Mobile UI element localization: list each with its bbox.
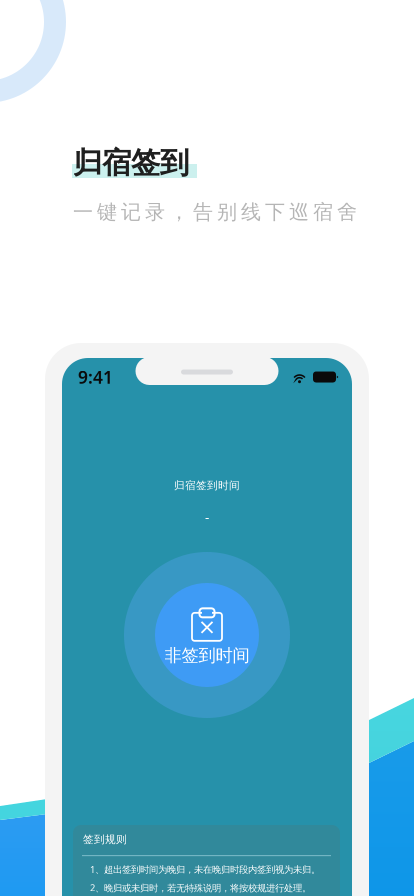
staticText: 2、晚归或未归时，若无特殊说明，将按校规进行处理。 [90,881,311,894]
staticText: - [205,508,209,526]
staticText: 1、超出签到时间为晚归，未在晚归时段内签到视为未归。 [90,863,320,875]
staticText: 9:41 [78,365,113,388]
staticText: 归宿签到 [73,145,189,181]
staticText: 一键记录，告别线下巡宿舍 [73,200,357,224]
staticText: 非签到时间 [164,645,249,666]
staticText: 签到规则 [83,833,127,846]
staticText: 归宿签到时间 [174,479,240,492]
button[interactable]: 非签到时间 [124,552,290,718]
